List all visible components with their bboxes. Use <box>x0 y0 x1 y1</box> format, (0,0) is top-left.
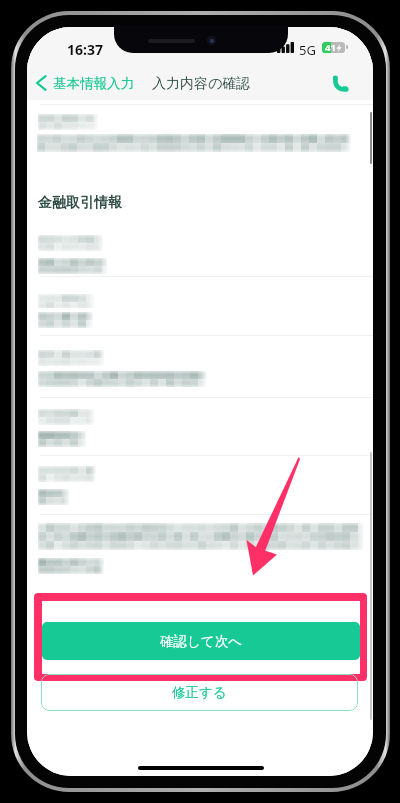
button[interactable]: 電話する <box>323 66 356 99</box>
staticText: 基本情報入力 <box>53 75 134 92</box>
staticText: 16:37 <box>67 40 103 59</box>
staticText: 入力内容の確認 <box>152 75 251 93</box>
staticText: 確認して次へ <box>160 633 242 650</box>
button[interactable]: 基本情報入力 <box>35 71 134 95</box>
staticText: 修正する <box>172 684 227 701</box>
button[interactable]: 修正する <box>41 674 358 711</box>
staticText: 5G <box>299 41 316 59</box>
button[interactable]: 確認して次へ <box>42 622 360 660</box>
staticText: 金融取引情報 <box>38 194 122 212</box>
staticText: 41 <box>325 42 336 52</box>
